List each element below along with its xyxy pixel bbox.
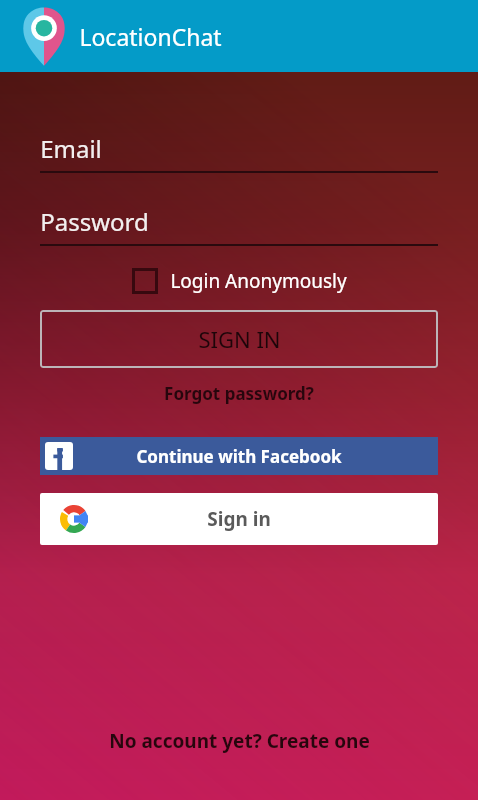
button[interactable]: No account yet? Create one xyxy=(0,728,478,754)
staticText: LocationChat xyxy=(79,21,222,52)
button[interactable]: Facebook xyxy=(40,437,438,475)
button[interactable]: Google xyxy=(40,493,438,545)
staticText: Continue with Facebook xyxy=(136,445,342,468)
staticText: Forgot password? xyxy=(164,382,314,405)
staticText: Password xyxy=(40,205,149,238)
other: Facebook xyxy=(45,442,73,470)
button[interactable]: Login Anonymously xyxy=(0,268,478,294)
staticText: No account yet? Create one xyxy=(109,728,370,754)
button[interactable]: Forgot password? xyxy=(0,382,478,405)
staticText: Email xyxy=(40,132,102,165)
other: Google xyxy=(60,505,88,533)
staticText: Login Anonymously xyxy=(170,268,347,294)
staticText: SIGN IN xyxy=(198,324,281,354)
staticText: Sign in xyxy=(207,506,271,532)
button[interactable]: SIGN IN xyxy=(40,310,438,368)
